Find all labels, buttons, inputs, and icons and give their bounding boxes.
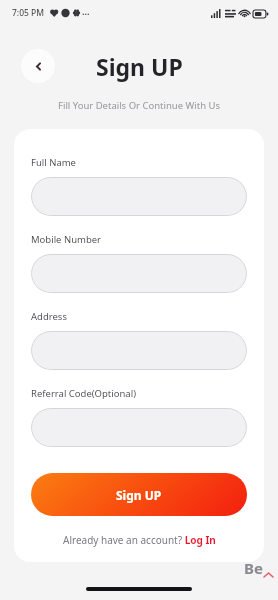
staticText: Referral Code(Optional) bbox=[31, 387, 136, 400]
button[interactable]: Already have an account? Log In bbox=[59, 531, 220, 549]
staticText: Mobile Number bbox=[31, 233, 102, 246]
button[interactable]: Referral Code(Optional) bbox=[31, 408, 247, 447]
staticText: Sign UP bbox=[116, 487, 162, 503]
button[interactable]: Sign UP bbox=[31, 473, 247, 516]
button[interactable]: Address bbox=[31, 331, 247, 370]
staticText: Sign UP bbox=[96, 51, 183, 82]
button[interactable]: Mobile Number bbox=[31, 254, 247, 293]
staticText: Address bbox=[31, 310, 67, 323]
button[interactable]: Back bbox=[21, 49, 55, 83]
staticText: Be bbox=[244, 558, 263, 578]
staticText: ··· bbox=[82, 7, 90, 19]
button[interactable]: Full Name bbox=[31, 177, 247, 216]
staticText: Already have an account? Log In bbox=[63, 533, 216, 547]
staticText: 7:05 PM bbox=[12, 7, 45, 19]
staticText: Fill Your Details Or Continue With Us bbox=[58, 99, 221, 112]
staticText: Full Name bbox=[31, 156, 76, 169]
